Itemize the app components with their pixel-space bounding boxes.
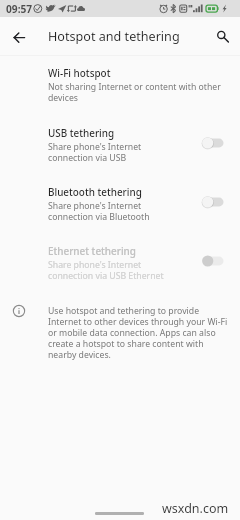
button[interactable]: Wi-Fi hotspot: [0, 58, 240, 117]
button[interactable]: Bluetooth tethering: [0, 177, 240, 236]
button[interactable]: Toggle Bluetooth tethering: [202, 191, 226, 213]
button[interactable]: Toggle USB tethering: [202, 132, 226, 154]
button[interactable]: Ethernet tethering: [0, 236, 240, 295]
staticText: Ethernet tethering: [48, 244, 136, 257]
staticText: Bluetooth tethering: [48, 185, 142, 198]
staticText: Wi-Fi hotspot: [48, 66, 111, 79]
staticText: Use hotspot and tethering to provide Int…: [48, 305, 229, 361]
staticText: Share phone's Internet connection via Bl…: [48, 200, 153, 223]
staticText: Not sharing Internet or content with oth…: [48, 81, 226, 104]
staticText: 09:57: [6, 2, 33, 16]
staticText: Hotspot and tethering: [48, 28, 180, 45]
button[interactable]: Search: [209, 23, 237, 51]
button[interactable]: Toggle Ethernet tethering: [202, 250, 226, 272]
staticText: wsxdn.com: [162, 500, 229, 517]
button[interactable]: Navigate up: [5, 22, 35, 52]
staticText: USB tethering: [48, 126, 115, 139]
staticText: Share phone's Internet connection via US…: [48, 141, 153, 164]
button[interactable]: USB tethering: [0, 118, 240, 177]
staticText: Share phone's Internet connection via US…: [48, 259, 170, 282]
